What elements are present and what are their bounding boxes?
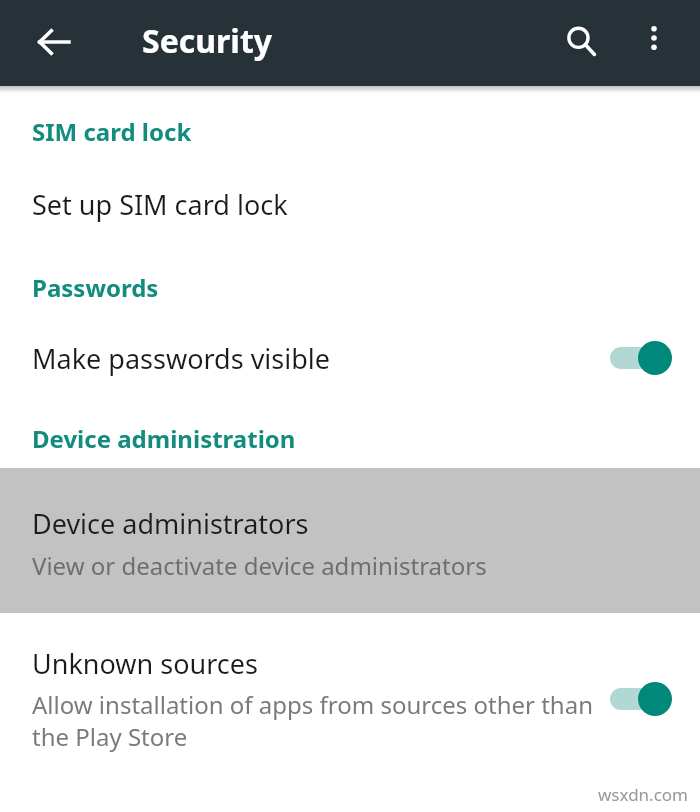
button[interactable]: Back bbox=[22, 10, 86, 74]
staticText: SIM card lock bbox=[32, 115, 192, 148]
button[interactable]: Set up SIM card lock bbox=[0, 182, 700, 227]
staticText: View or deactivate device administrators bbox=[32, 549, 487, 582]
staticText: Device administrators bbox=[32, 505, 309, 542]
button[interactable]: Unknown sources bbox=[0, 639, 700, 761]
staticText: Security bbox=[142, 19, 273, 63]
staticText: Passwords bbox=[32, 271, 159, 304]
button[interactable]: Search bbox=[550, 10, 612, 72]
button[interactable]: Device administrators bbox=[0, 468, 700, 613]
staticText: Device administration bbox=[32, 422, 296, 455]
staticText: Allow installation of apps from sources … bbox=[32, 688, 600, 753]
button[interactable]: Toggle bbox=[610, 679, 672, 719]
staticText: Unknown sources bbox=[32, 645, 258, 682]
button[interactable]: Make passwords visible bbox=[0, 338, 700, 378]
staticText: Set up SIM card lock bbox=[32, 186, 288, 223]
staticText: Make passwords visible bbox=[32, 340, 610, 377]
button[interactable]: More options bbox=[626, 10, 682, 66]
staticText: wsxdn.com bbox=[597, 783, 688, 806]
button[interactable]: Toggle bbox=[610, 338, 672, 378]
